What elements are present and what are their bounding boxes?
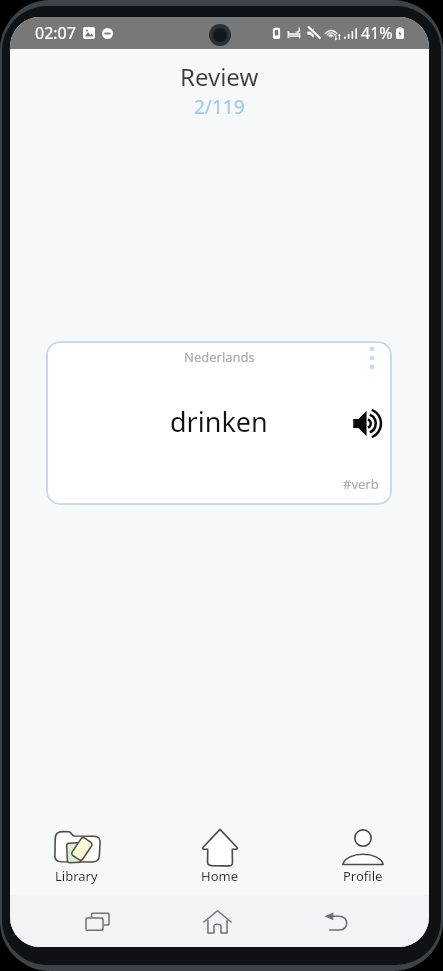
staticText: Home <box>201 867 238 885</box>
button[interactable]: More options <box>358 344 386 372</box>
staticText: 02:07 <box>35 22 76 44</box>
staticText: Nederlands <box>184 348 255 366</box>
staticText: 41% <box>361 22 393 44</box>
button[interactable]: Nederlands <box>46 341 392 505</box>
staticText: Review <box>180 60 259 93</box>
staticText: drinken <box>170 403 268 440</box>
button[interactable]: Profile <box>323 822 402 885</box>
staticText: Library <box>55 867 98 885</box>
staticText: Profile <box>343 867 383 885</box>
button[interactable]: Recents <box>71 895 123 947</box>
staticText: 2/119 <box>194 94 245 120</box>
staticText: #verb <box>343 475 379 493</box>
button[interactable]: Play pronunciation <box>350 405 384 439</box>
button[interactable]: Home <box>180 822 259 885</box>
button[interactable]: Home <box>189 895 241 947</box>
button[interactable]: Back <box>310 895 362 947</box>
button[interactable]: Library <box>37 822 116 885</box>
